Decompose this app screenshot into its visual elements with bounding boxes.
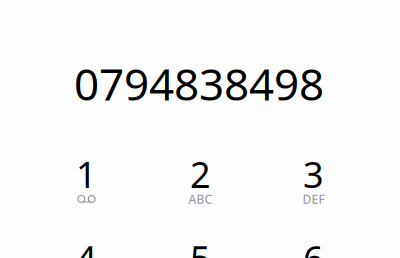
button[interactable]: 1, voicemail bbox=[34, 150, 138, 230]
button[interactable]: 5 JKL bbox=[148, 234, 252, 258]
button[interactable]: 2 ABC bbox=[148, 150, 252, 230]
staticText: 5 bbox=[190, 234, 211, 258]
staticText: ABC bbox=[188, 191, 212, 207]
staticText: 2 bbox=[190, 150, 211, 198]
button[interactable]: 6 MNO bbox=[261, 234, 365, 258]
staticText: 1 bbox=[76, 150, 97, 198]
button[interactable]: 3 DEF bbox=[261, 150, 365, 230]
staticText: 4 bbox=[76, 234, 97, 258]
button[interactable]: 4 GHI bbox=[34, 234, 138, 258]
staticText: 6 bbox=[303, 234, 324, 258]
staticText: 0794838498 bbox=[74, 54, 324, 113]
staticText: DEF bbox=[302, 191, 324, 207]
staticText: 3 bbox=[303, 150, 324, 198]
